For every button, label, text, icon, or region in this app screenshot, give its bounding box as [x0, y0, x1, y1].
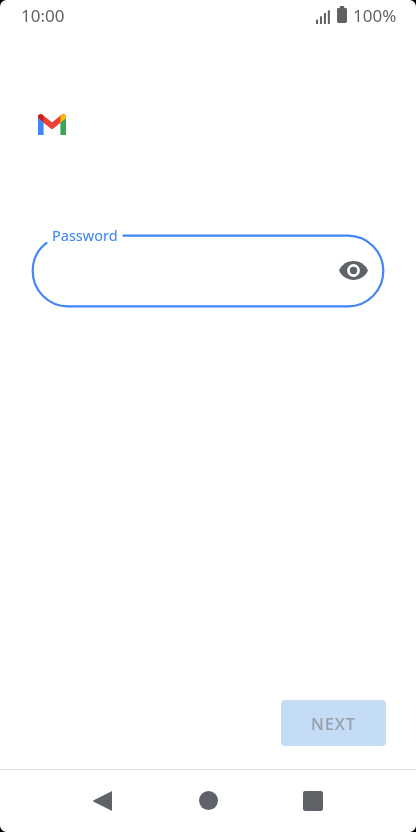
staticText: NEXT: [311, 712, 356, 734]
staticText: 100%: [353, 4, 397, 27]
staticText: Password: [52, 225, 118, 245]
button[interactable]: NEXT: [281, 700, 386, 746]
staticText: 10:00: [21, 4, 65, 27]
button[interactable]: Recent apps: [286, 774, 339, 827]
button[interactable]: Back: [76, 774, 129, 827]
button[interactable]: Home: [182, 774, 235, 827]
button[interactable]: Show password: [333, 250, 374, 291]
